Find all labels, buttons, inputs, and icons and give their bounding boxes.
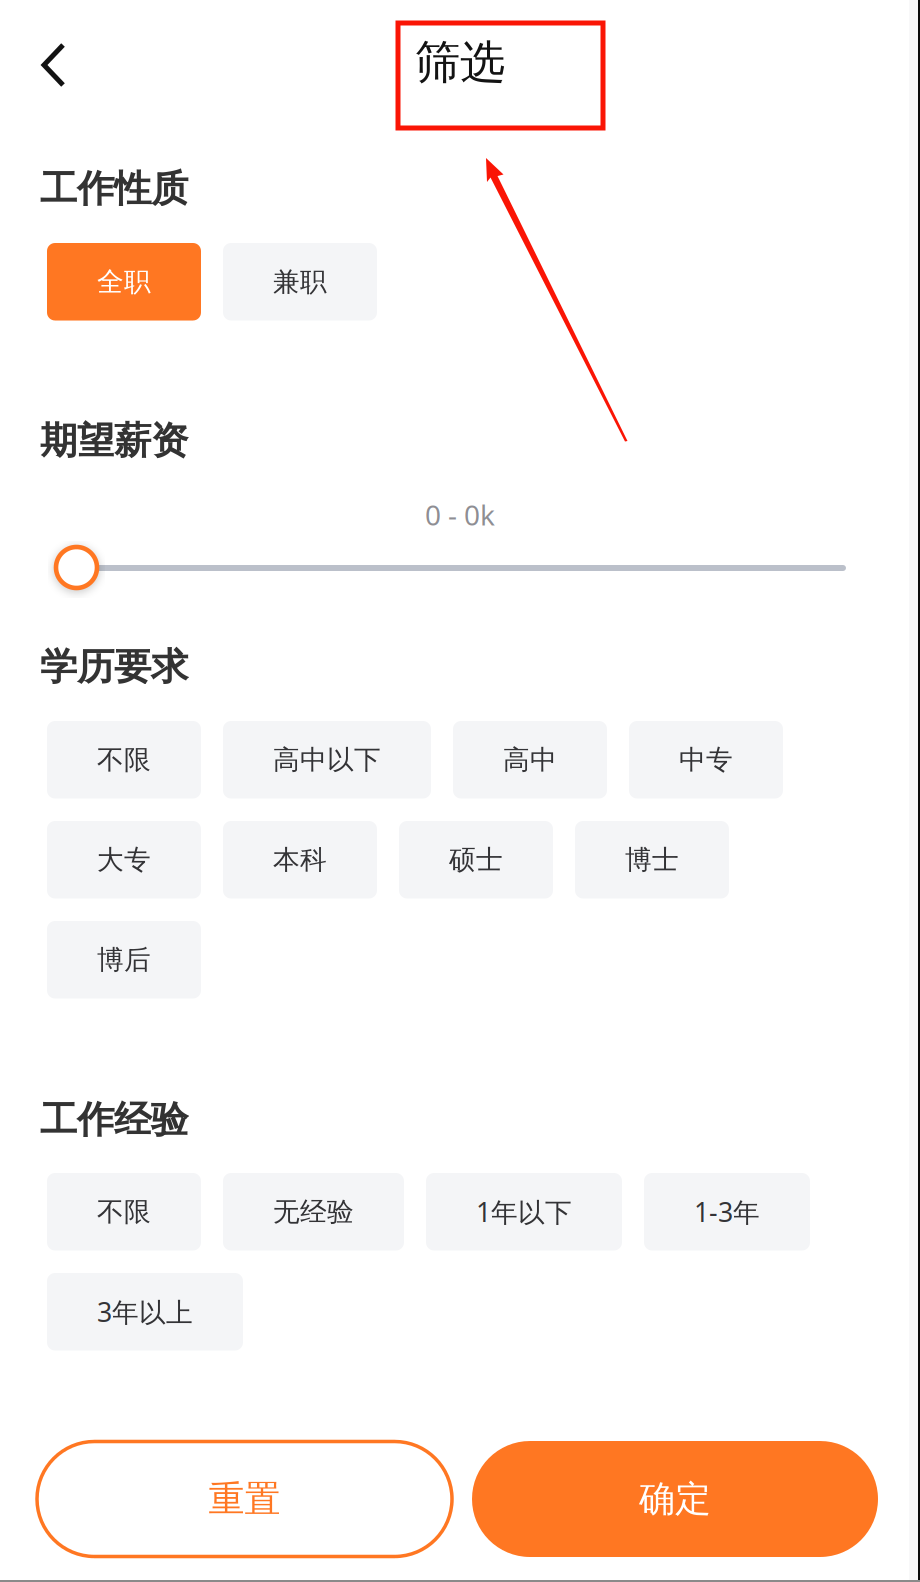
staticText: 不限 (97, 743, 151, 776)
button[interactable]: 高中以下 (223, 721, 431, 798)
staticText: 筛选 (415, 34, 505, 90)
staticText: 1年以下 (476, 1194, 572, 1229)
button[interactable]: Back (16, 35, 96, 125)
staticText: 本科 (273, 843, 327, 876)
button[interactable]: 全职 (47, 243, 201, 320)
staticText: 工作性质 (40, 166, 188, 212)
button[interactable]: 博后 (47, 921, 201, 998)
staticText: 3年以上 (97, 1294, 193, 1329)
button[interactable]: 确定 (472, 1441, 878, 1557)
button[interactable]: 高中 (453, 721, 607, 798)
staticText: 高中 (503, 743, 557, 776)
staticText: 重置 (208, 1477, 280, 1521)
staticText: 无经验 (273, 1195, 354, 1228)
staticText: 博后 (97, 943, 151, 976)
button[interactable]: 大专 (47, 821, 201, 898)
button[interactable]: 硕士 (399, 821, 553, 898)
button[interactable]: 兼职 (223, 243, 377, 320)
staticText: 不限 (97, 1195, 151, 1228)
button[interactable]: 不限 (47, 721, 201, 798)
button[interactable]: 不限 (47, 1173, 201, 1250)
staticText: 确定 (639, 1477, 711, 1521)
button[interactable]: 重置 (37, 1441, 452, 1556)
button[interactable]: 博士 (575, 821, 729, 898)
button[interactable]: 无经验 (223, 1173, 404, 1250)
staticText: 大专 (97, 843, 151, 876)
staticText: 工作经验 (40, 1097, 188, 1143)
staticText: 中专 (679, 743, 733, 776)
staticText: 1-3年 (694, 1194, 760, 1229)
staticText: 硕士 (449, 843, 503, 876)
staticText: 高中以下 (273, 743, 381, 776)
staticText: 期望薪资 (40, 418, 188, 464)
staticText: 兼职 (273, 265, 327, 298)
button[interactable]: 3年以上 (47, 1273, 243, 1350)
staticText: 全职 (97, 265, 151, 298)
staticText: 0 - 0k (425, 496, 495, 533)
button[interactable]: 1年以下 (426, 1173, 622, 1250)
staticText: 博士 (625, 843, 679, 876)
button[interactable]: 中专 (629, 721, 783, 798)
button[interactable]: 1-3年 (644, 1173, 810, 1250)
staticText: 学历要求 (40, 644, 188, 690)
button[interactable]: 本科 (223, 821, 377, 898)
